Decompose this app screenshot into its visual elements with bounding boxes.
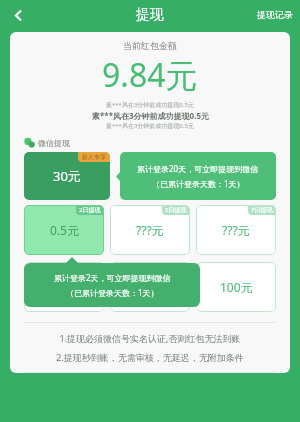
staticText: ???元 [50, 279, 78, 295]
staticText: ???元 [222, 222, 250, 238]
button[interactable]: ???元 [110, 205, 190, 255]
staticText: 9.84元 [102, 53, 198, 97]
staticText: （已累计登录天数：1天） [152, 178, 245, 189]
staticText: 新人专享 [82, 153, 106, 161]
button[interactable]: ???元 [24, 262, 104, 312]
button[interactable]: 30元 [24, 152, 110, 200]
staticText: 100元 [220, 279, 253, 295]
staticText: ???元 [136, 279, 164, 295]
button[interactable]: 累计登录20天，可立即提现到微信 [120, 152, 276, 200]
button[interactable]: ???元 [110, 262, 190, 312]
staticText: 2.提现秒到账，无需审核，无延迟，无附加条件 [24, 351, 276, 363]
staticText: 5日提现 [165, 206, 187, 214]
staticText: 素***风在3分钟前成功提现0.5元 [106, 101, 194, 109]
staticText: 累计登录20天，可立即提现到微信 [137, 163, 259, 174]
staticText: 7日提现 [251, 206, 273, 214]
staticText: 0.5元 [50, 222, 79, 238]
staticText: 素***风在3分钟前成功提现0.5元 [106, 122, 194, 130]
staticText: 累计登录2天，可立即提现到微信 [54, 272, 171, 283]
staticText: 当前红包金额 [123, 40, 177, 51]
staticText: ???元 [136, 222, 164, 238]
staticText: 1.提现必须微信号实名认证,否则红包无法到账 [24, 332, 276, 344]
button[interactable]: 提现记录 [250, 4, 300, 25]
staticText: （已累计登录天数：1天） [66, 287, 159, 298]
button[interactable]: 100元 [196, 262, 276, 312]
staticText: 30元 [53, 167, 81, 185]
staticText: 微信提现 [38, 138, 70, 148]
button[interactable]: 0.5元 [24, 205, 104, 255]
staticText: 2日提现 [79, 206, 101, 214]
staticText: 提现 [136, 6, 164, 24]
staticText: 素***风在3分钟前成功提现0.5元 [92, 110, 209, 121]
button[interactable]: ???元 [196, 205, 276, 255]
button[interactable]: Back [5, 2, 31, 28]
staticText: 提现记录 [257, 9, 293, 20]
